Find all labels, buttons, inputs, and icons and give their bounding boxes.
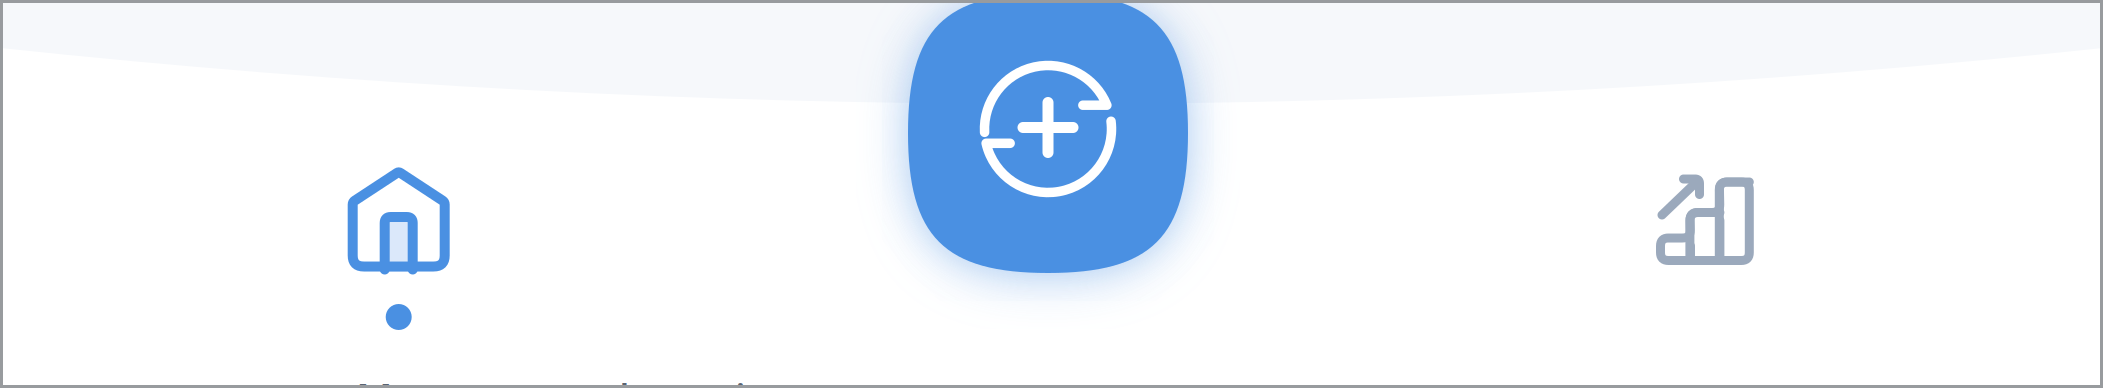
button[interactable]: Statistics xyxy=(1575,168,1835,378)
staticText: Mes comptes bancaires xyxy=(356,371,804,388)
button[interactable]: Home xyxy=(264,165,534,387)
button[interactable]: Add xyxy=(908,0,1188,273)
